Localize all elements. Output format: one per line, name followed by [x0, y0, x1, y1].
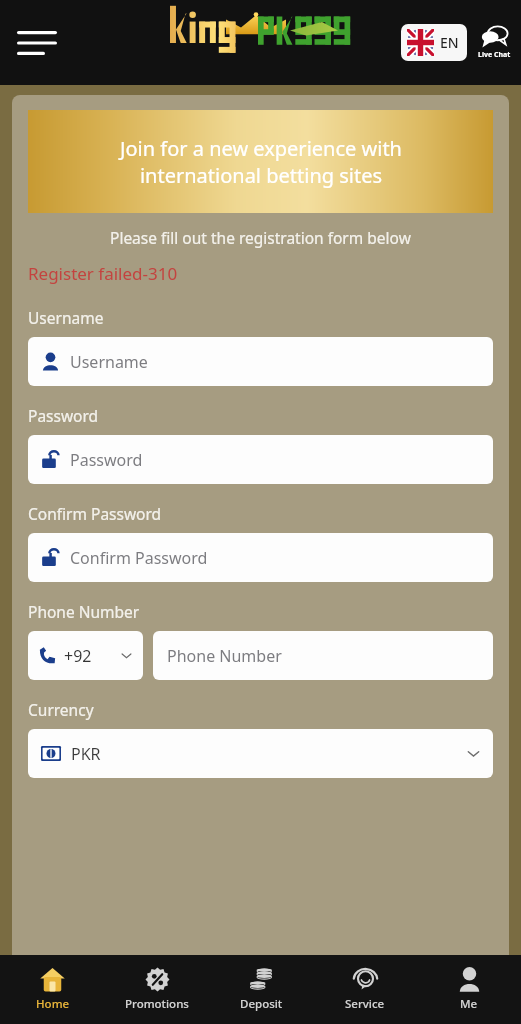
button[interactable]: PKR	[28, 729, 493, 778]
staticText: Confirm Password	[28, 503, 162, 524]
staticText: Register failed-310	[28, 262, 178, 285]
staticText: Password	[28, 405, 99, 426]
staticText: PKR	[71, 743, 101, 765]
staticText: Home	[36, 996, 70, 1012]
button[interactable]: Username	[28, 337, 493, 386]
button[interactable]: Password	[28, 435, 493, 484]
staticText: Service	[345, 996, 385, 1012]
staticText: Username	[28, 307, 104, 328]
staticText: Live Chat	[478, 50, 511, 60]
staticText: Username	[70, 351, 148, 373]
staticText: Password	[70, 449, 143, 471]
button[interactable]: +92	[28, 631, 143, 680]
staticText: Join for a new experience with internati…	[120, 135, 402, 189]
button[interactable]: Confirm Password	[28, 533, 493, 582]
button[interactable]: Home	[0, 955, 105, 1024]
staticText: +92	[64, 645, 92, 667]
staticText: Deposit	[240, 996, 283, 1012]
staticText: Me	[460, 996, 478, 1012]
button[interactable]: Service	[313, 955, 417, 1024]
button[interactable]: Live Chat	[476, 25, 513, 60]
button[interactable]: Deposit	[209, 955, 313, 1024]
staticText: Currency	[28, 699, 94, 720]
staticText: Confirm Password	[70, 547, 208, 569]
button[interactable]: Menu	[8, 14, 66, 72]
button[interactable]: Promotions	[105, 955, 209, 1024]
staticText: Phone Number	[167, 645, 282, 667]
button[interactable]: Me	[417, 955, 521, 1024]
button[interactable]: EN	[401, 24, 467, 61]
staticText: Promotions	[125, 996, 189, 1012]
staticText: Phone Number	[28, 601, 140, 622]
staticText: Please fill out the registration form be…	[110, 227, 411, 248]
button[interactable]: Phone Number	[153, 631, 493, 680]
staticText: EN	[440, 33, 459, 52]
